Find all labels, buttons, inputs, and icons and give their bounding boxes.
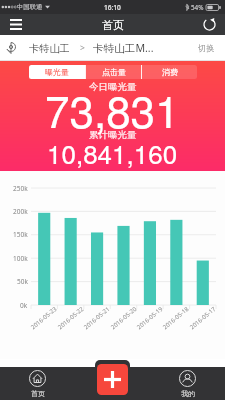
- button[interactable]: 消费: [142, 65, 197, 79]
- staticText: 今日曝光量: [89, 81, 137, 93]
- staticText: 0k: [20, 301, 28, 310]
- staticText: 首页: [102, 18, 124, 32]
- staticText: 10,841,160: [47, 134, 178, 171]
- staticText: 2016-05-18: [161, 305, 191, 331]
- staticText: 150k: [13, 230, 28, 239]
- staticText: 累计曝光量: [89, 129, 137, 141]
- staticText: 2016-05-23: [29, 305, 59, 331]
- button[interactable]: Add: [97, 364, 128, 395]
- staticText: 250k: [13, 184, 28, 193]
- staticText: 2016-05-21: [82, 305, 112, 331]
- staticText: 点击量: [102, 67, 126, 77]
- staticText: >: [80, 42, 85, 54]
- staticText: 16:10: [104, 3, 121, 12]
- staticText: 2016-05-19: [135, 305, 165, 331]
- staticText: 100k: [13, 254, 28, 263]
- staticText: 73,831: [45, 77, 180, 140]
- staticText: 54%: [191, 3, 204, 12]
- button[interactable]: 曝光量: [29, 65, 85, 79]
- staticText: 切换: [198, 43, 215, 53]
- staticText: 我的: [181, 389, 195, 398]
- staticText: 消费: [162, 67, 178, 77]
- staticText: 200k: [13, 207, 28, 216]
- button[interactable]: 首页: [0, 367, 75, 400]
- staticText: 曝光量: [45, 67, 69, 77]
- button[interactable]: 切换: [196, 39, 217, 57]
- staticText: 2016-05-17: [188, 305, 218, 331]
- button[interactable]: 点击量: [86, 65, 141, 79]
- staticText: 50k: [17, 277, 28, 286]
- button[interactable]: 我的: [150, 367, 225, 400]
- staticText: 中国联通: [17, 3, 43, 11]
- staticText: 卡特山工M...: [93, 41, 154, 55]
- staticText: 卡特山工: [29, 42, 70, 55]
- staticText: 2016-05-22: [56, 305, 86, 331]
- staticText: 2016-05-20: [109, 305, 139, 331]
- button[interactable]: Refresh: [193, 14, 225, 35]
- staticText: 首页: [31, 389, 45, 398]
- button[interactable]: Menu: [0, 14, 32, 35]
